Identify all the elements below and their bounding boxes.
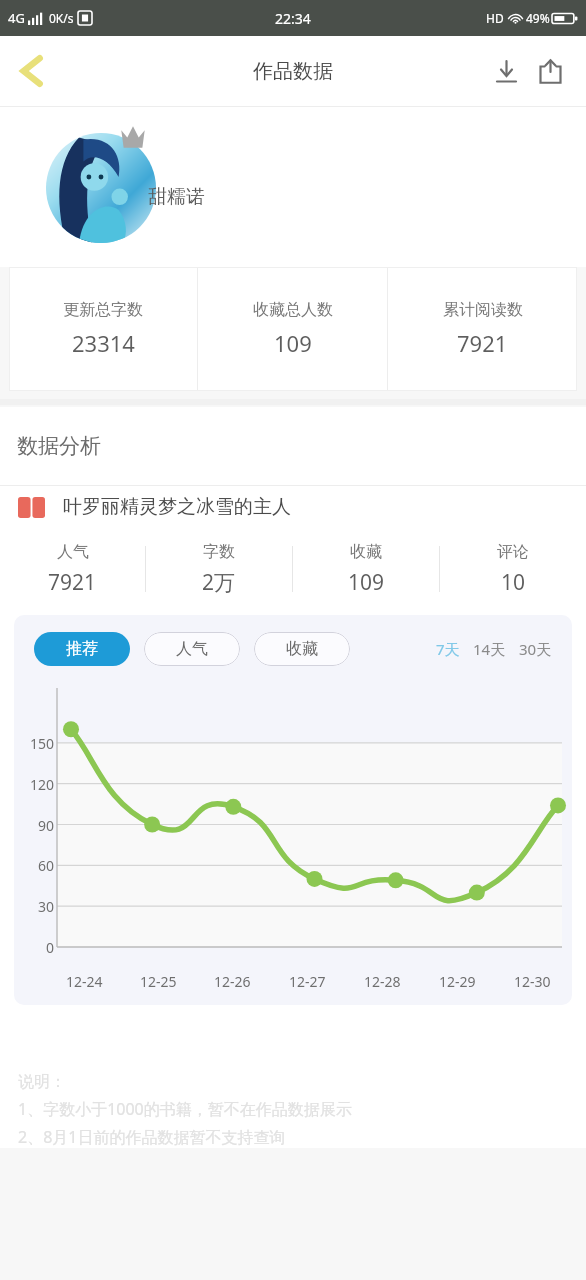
staticText: 1、字数小于1000的书籍，暂不在作品数据展示 <box>18 1098 352 1120</box>
button[interactable]: 收藏 <box>254 632 350 666</box>
button[interactable]: 收藏 <box>293 542 439 597</box>
staticText: 更新总字数 <box>63 300 143 320</box>
button[interactable]: Share <box>528 49 572 93</box>
staticText: 12-24 <box>66 972 103 991</box>
button[interactable]: 累计阅读数 <box>388 267 577 391</box>
button[interactable]: 7天 <box>434 639 462 659</box>
staticText: 收藏总人数 <box>253 300 333 320</box>
staticText: 12-28 <box>364 972 401 991</box>
button[interactable]: 评论 <box>440 542 586 597</box>
staticText: 作品数据 <box>253 59 333 84</box>
staticText: 30天 <box>519 639 552 659</box>
staticText: 2、8月1日前的作品数据暂不支持查询 <box>18 1126 286 1148</box>
staticText: 7921 <box>457 328 508 358</box>
staticText: 7921 <box>48 568 97 597</box>
staticText: 甜糯诺 <box>148 185 205 209</box>
button[interactable]: 叶罗丽精灵梦之冰雪的主人 <box>0 486 586 528</box>
staticText: 90 <box>38 816 55 835</box>
staticText: 49% <box>526 10 550 26</box>
staticText: 12-26 <box>214 972 251 991</box>
button[interactable]: Download <box>484 49 528 93</box>
button[interactable]: 人气 <box>0 542 145 597</box>
staticText: 14天 <box>473 639 506 659</box>
staticText: 12-30 <box>514 972 551 991</box>
button[interactable]: 30天 <box>517 639 554 659</box>
staticText: HD <box>486 10 504 26</box>
staticText: 30 <box>38 897 55 916</box>
staticText: 109 <box>348 568 385 597</box>
staticText: 0 <box>46 938 55 957</box>
staticText: 收藏 <box>350 542 382 562</box>
staticText: 10 <box>501 568 526 597</box>
staticText: 收藏 <box>286 639 318 659</box>
staticText: 数据分析 <box>17 433 101 459</box>
staticText: 109 <box>274 328 312 358</box>
staticText: 22:34 <box>275 9 311 28</box>
staticText: 120 <box>30 775 55 794</box>
staticText: 12-25 <box>140 972 177 991</box>
staticText: 12-27 <box>289 972 326 991</box>
button[interactable]: 推荐 <box>34 632 130 666</box>
button[interactable]: 人气 <box>144 632 240 666</box>
button[interactable]: 字数 <box>146 542 292 597</box>
staticText: 评论 <box>497 542 529 562</box>
button[interactable]: 14天 <box>471 639 508 659</box>
staticText: 150 <box>30 734 55 753</box>
button[interactable]: 收藏总人数 <box>198 267 387 391</box>
staticText: 字数 <box>203 542 235 562</box>
staticText: 4G <box>8 9 25 27</box>
staticText: 推荐 <box>66 639 98 659</box>
staticText: 累计阅读数 <box>443 300 523 320</box>
staticText: 23314 <box>72 328 135 358</box>
staticText: 人气 <box>176 639 208 659</box>
staticText: 12-29 <box>439 972 476 991</box>
button[interactable]: 更新总字数 <box>9 267 197 391</box>
staticText: 说明： <box>18 1072 66 1092</box>
staticText: 60 <box>38 856 55 875</box>
staticText: 2万 <box>202 568 236 597</box>
button[interactable]: Back <box>6 45 58 97</box>
staticText: 0K/s <box>49 10 74 26</box>
button[interactable]: Avatar <box>46 133 156 243</box>
staticText: 人气 <box>57 542 89 562</box>
staticText: 7天 <box>436 639 460 659</box>
staticText: 叶罗丽精灵梦之冰雪的主人 <box>63 495 291 519</box>
